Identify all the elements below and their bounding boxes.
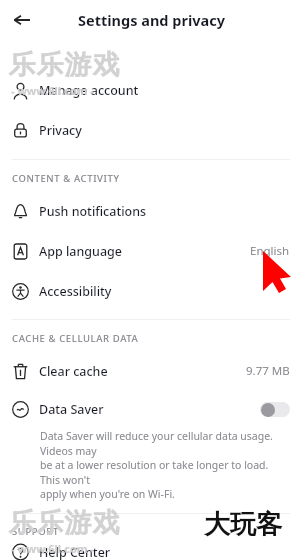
staticText: - www.6ll.com - — [11, 83, 94, 98]
staticText: 乐乐游戏 — [8, 506, 120, 540]
button[interactable]: Clear cache — [0, 351, 302, 391]
staticText: SUPPORT — [12, 525, 59, 538]
staticText: Manage account — [39, 82, 139, 99]
button[interactable]: Push notifications — [0, 191, 302, 231]
button[interactable]: Help Center — [0, 544, 302, 560]
staticText: apply when you're on Wi-Fi. — [40, 487, 175, 501]
staticText: Data Saver will reduce your cellular dat… — [40, 429, 286, 458]
staticText: Data Saver — [39, 401, 104, 418]
staticText: Push notifications — [39, 203, 147, 220]
staticText: 乐乐游戏 — [8, 48, 120, 82]
staticText: - www.6ll.com - — [11, 541, 94, 556]
button[interactable]: Accessibility — [0, 271, 302, 311]
staticText: 9.77 MB — [246, 363, 290, 379]
button[interactable]: Data Saver — [0, 391, 302, 427]
staticText: CONTENT & ACTIVITY — [12, 172, 120, 185]
staticText: Settings and privacy — [78, 10, 225, 30]
staticText: 大玩客 — [204, 508, 282, 541]
staticText: Help Center — [39, 544, 111, 560]
button[interactable]: App language — [0, 231, 302, 271]
button[interactable]: Manage account — [0, 70, 302, 110]
button[interactable]: Privacy — [0, 110, 302, 150]
button[interactable]: Back — [6, 4, 38, 36]
staticText: Accessibility — [39, 283, 112, 300]
staticText: App language — [39, 243, 122, 260]
staticText: English — [250, 243, 290, 259]
staticText: CACHE & CELLULAR DATA — [12, 332, 139, 345]
staticText: Privacy — [39, 122, 82, 139]
staticText: be at a lower resolution or take longer … — [40, 458, 286, 487]
staticText: Clear cache — [39, 363, 108, 380]
